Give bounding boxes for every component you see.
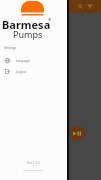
- staticText: ®: [48, 17, 52, 22]
- staticText: Ver. 1.3.3: [0, 161, 67, 165]
- staticText: Settings: [4, 46, 17, 50]
- staticText: Barmesa: [2, 17, 51, 32]
- staticText: Logout: [16, 70, 26, 74]
- button[interactable]: Search: [75, 0, 85, 13]
- staticText: DESIGN BY BARMESA: [0, 169, 67, 172]
- button[interactable]: Play: [70, 126, 85, 141]
- button[interactable]: Filter: [85, 0, 95, 13]
- button[interactable]: Language: [0, 55, 67, 66]
- staticText: Language: [16, 59, 31, 63]
- staticText: Pumps: [13, 28, 43, 40]
- button[interactable]: Logout: [0, 66, 67, 77]
